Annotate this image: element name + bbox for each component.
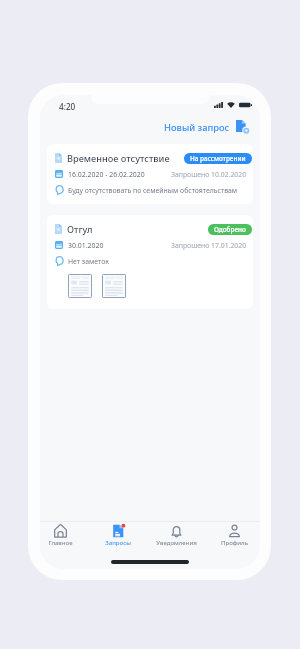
button[interactable]: Запросы [89,522,147,546]
button[interactable]: Главное [40,522,89,546]
button[interactable]: Временное отсутствие [47,144,253,204]
button[interactable]: Профиль [205,522,260,546]
staticText: 16.02.2020 - 26.02.2020 [68,170,145,179]
staticText: Профиль [221,538,248,546]
button[interactable]: Новый запрос [160,118,260,136]
other: Профиль [228,524,241,538]
button[interactable] [68,274,92,298]
staticText: Главное [48,538,73,546]
staticText: Одобрено [214,225,246,234]
staticText: Запрошено 17.01.2020 [171,241,247,250]
button[interactable]: Отгул [47,215,253,309]
staticText: Запросы [105,538,131,546]
staticText: Уведомления [156,538,197,546]
button[interactable] [102,274,126,298]
staticText: Отгул [67,223,93,236]
staticText: Нет заметок [68,257,109,266]
staticText: Временное отсутствие [67,152,170,165]
staticText: 4:20 [59,101,76,112]
staticText: Новый запрос [164,121,230,134]
other: Уведомления [170,524,183,538]
other: Запросы [112,524,125,538]
staticText: На рассмотрении [190,154,246,163]
staticText: Буду отсутствовать по семейным обстоятел… [68,186,238,195]
other: Главное [54,524,67,538]
staticText: Запрошено 10.02.2020 [171,170,247,179]
button[interactable]: Уведомления [147,522,205,546]
staticText: 30.01.2020 [68,241,104,250]
